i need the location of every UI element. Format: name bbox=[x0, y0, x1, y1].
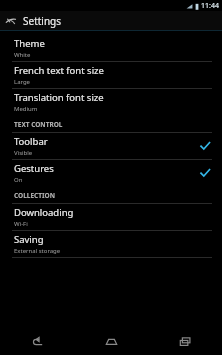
staticText: Settings bbox=[23, 14, 62, 28]
button[interactable]: Gestures bbox=[0, 160, 222, 186]
staticText: Downloading bbox=[14, 206, 74, 219]
button[interactable]: Downloading bbox=[0, 204, 222, 230]
staticText: Visible bbox=[14, 149, 33, 157]
other: App icon bbox=[5, 15, 17, 27]
button[interactable]: Back bbox=[0, 327, 74, 355]
button[interactable]: Translation font size bbox=[0, 89, 222, 115]
staticText: Wi-Fi bbox=[14, 220, 28, 228]
staticText: Translation font size bbox=[14, 91, 104, 104]
button[interactable]: Theme bbox=[0, 35, 222, 61]
staticText: French text font size bbox=[14, 64, 104, 77]
button[interactable]: Saving bbox=[0, 231, 222, 257]
staticText: Saving bbox=[14, 233, 44, 246]
staticText: COLLECTION bbox=[14, 191, 55, 200]
staticText: TEXT CONTROL bbox=[14, 120, 63, 129]
staticText: White bbox=[14, 51, 31, 59]
staticText: On bbox=[14, 176, 23, 184]
staticText: Medium bbox=[14, 105, 38, 113]
staticText: Theme bbox=[14, 37, 45, 50]
staticText: 11:44 bbox=[201, 1, 219, 11]
staticText: Toolbar bbox=[14, 135, 48, 148]
button[interactable]: Gestures checkbox bbox=[198, 166, 212, 180]
button[interactable]: French text font size bbox=[0, 62, 222, 88]
button[interactable]: Recent apps bbox=[148, 327, 222, 355]
button[interactable]: App icon bbox=[0, 11, 222, 30]
staticText: Large bbox=[14, 78, 31, 86]
button[interactable]: Toolbar checkbox bbox=[198, 139, 212, 153]
button[interactable]: Toolbar bbox=[0, 133, 222, 159]
staticText: External storage bbox=[14, 247, 61, 255]
button[interactable]: Home bbox=[74, 327, 148, 355]
staticText: Gestures bbox=[14, 162, 54, 175]
